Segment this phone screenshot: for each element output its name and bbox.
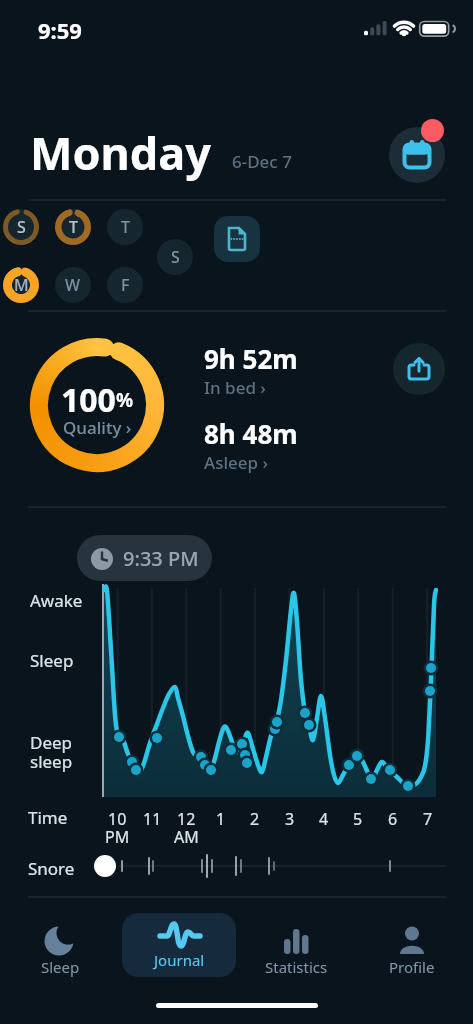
staticText: 100: [61, 378, 116, 422]
staticText: 12: [177, 808, 196, 830]
button[interactable]: Statistics: [256, 924, 336, 977]
staticText: PM: [105, 826, 130, 848]
staticText: S: [171, 246, 180, 268]
staticText: 8h 48m: [204, 416, 298, 451]
staticText: M: [14, 274, 29, 296]
staticText: In bed ›: [204, 376, 266, 399]
button[interactable]: Quality ›: [52, 416, 142, 439]
staticText: sleep: [30, 750, 73, 773]
staticText: F: [121, 274, 130, 296]
button[interactable]: F: [107, 267, 143, 303]
staticText: 1: [216, 808, 226, 830]
staticText: 6-Dec 7: [232, 150, 292, 173]
staticText: 9:33 PM: [123, 545, 199, 572]
staticText: Journal: [154, 950, 205, 970]
button[interactable]: 9:33 PM: [77, 535, 212, 581]
button[interactable]: 9h 52m: [204, 341, 298, 474]
staticText: 2: [250, 808, 260, 830]
staticText: S: [17, 216, 26, 238]
staticText: 6: [388, 808, 398, 830]
staticText: Snore: [28, 857, 75, 880]
staticText: Sleep: [41, 957, 80, 977]
button[interactable]: [389, 127, 445, 183]
button[interactable]: Sleep: [25, 924, 95, 977]
button[interactable]: [214, 216, 260, 262]
staticText: 9:59: [38, 15, 82, 45]
staticText: Time: [28, 806, 68, 829]
staticText: 10: [108, 808, 127, 830]
staticText: W: [65, 274, 81, 296]
staticText: Sleep: [30, 649, 74, 672]
button[interactable]: W: [55, 267, 91, 303]
staticText: %: [116, 387, 134, 413]
button[interactable]: Profile: [377, 924, 447, 977]
staticText: 7: [423, 808, 433, 830]
staticText: 4: [319, 808, 329, 830]
staticText: Deep: [30, 731, 73, 754]
staticText: 9h 52m: [204, 341, 298, 376]
button[interactable]: Journal: [122, 913, 236, 977]
button[interactable]: T: [107, 209, 143, 245]
staticText: 11: [143, 808, 162, 830]
button[interactable]: S: [157, 239, 193, 275]
staticText: 5: [353, 808, 363, 830]
staticText: Statistics: [265, 957, 328, 977]
button[interactable]: S: [3, 209, 39, 245]
staticText: Profile: [389, 957, 435, 977]
staticText: Quality ›: [63, 416, 132, 439]
staticText: 3: [285, 808, 295, 830]
staticText: T: [121, 216, 130, 238]
staticText: Asleep ›: [204, 451, 269, 474]
staticText: AM: [174, 826, 199, 848]
button[interactable]: M: [3, 267, 39, 303]
staticText: Monday: [30, 122, 211, 183]
button[interactable]: T: [55, 209, 91, 245]
staticText: T: [69, 216, 78, 238]
staticText: Awake: [30, 589, 83, 612]
button[interactable]: [393, 343, 445, 395]
